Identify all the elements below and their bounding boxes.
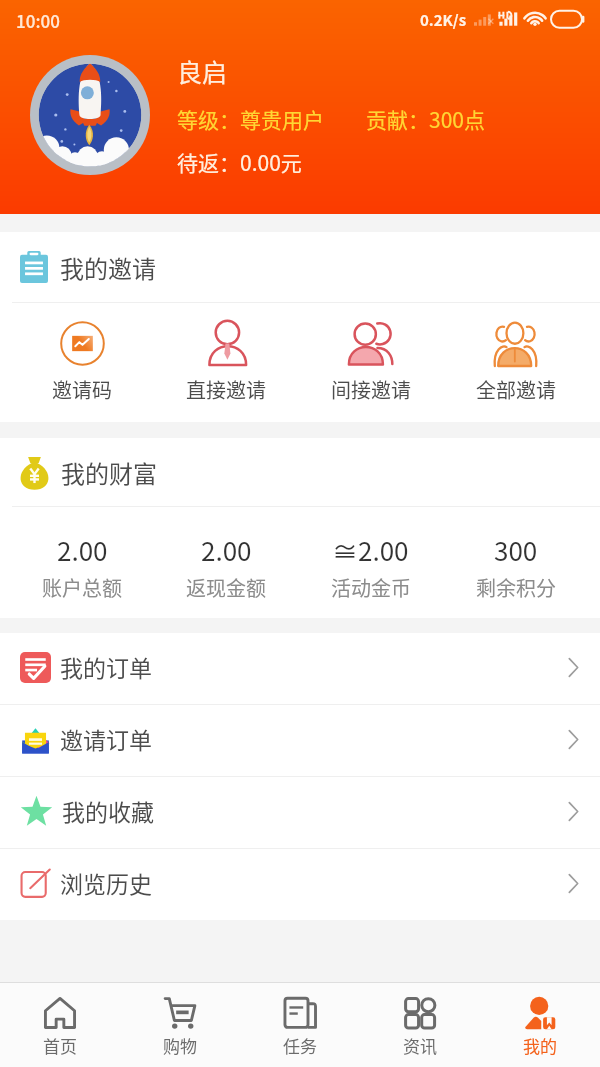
button[interactable]: 300 (443, 507, 588, 618)
staticText: 我的邀请 (60, 250, 156, 285)
button[interactable]: 邀请码 (10, 303, 154, 422)
staticText: 资讯 (403, 1033, 437, 1058)
staticText: 300 (494, 531, 538, 569)
button[interactable]: 2.00 (154, 507, 298, 618)
button[interactable]: 我的订单 (0, 633, 600, 704)
staticText: 2.00 (201, 531, 252, 569)
button[interactable]: 邀请订单 (0, 705, 600, 776)
button[interactable]: 我的收藏 (0, 777, 600, 848)
staticText: 浏览历史 (60, 866, 152, 899)
staticText: 贡献：300点 (366, 104, 485, 134)
button[interactable]: 首页 (0, 983, 120, 1067)
staticText: ≅2.00 (332, 531, 409, 569)
staticText: 待返：0.00元 (177, 147, 302, 177)
staticText: 任务 (283, 1033, 317, 1058)
staticText: 间接邀请 (331, 375, 411, 404)
button[interactable]: 资讯 (360, 983, 480, 1067)
staticText: 账户总额 (42, 573, 122, 602)
button[interactable]: 我的 (480, 983, 600, 1067)
staticText: 2.00 (57, 531, 108, 569)
staticText: 0.2K/s (420, 9, 467, 31)
button[interactable]: 购物 (120, 983, 240, 1067)
staticText: 首页 (43, 1033, 77, 1058)
staticText: 购物 (163, 1033, 197, 1058)
staticText: 邀请码 (52, 375, 112, 404)
button[interactable]: 间接邀请 (298, 303, 443, 422)
staticText: 10:00 (16, 8, 60, 33)
staticText: 等级：尊贵用户 (177, 104, 324, 134)
staticText: 良启 (177, 53, 228, 89)
staticText: 邀请订单 (60, 722, 152, 755)
staticText: 我的 (523, 1033, 557, 1058)
button[interactable]: 任务 (240, 983, 360, 1067)
staticText: 返现金额 (186, 573, 266, 602)
button[interactable]: 浏览历史 (0, 849, 600, 920)
button[interactable]: ≅2.00 (298, 507, 443, 618)
staticText: 全部邀请 (476, 375, 556, 404)
staticText: 直接邀请 (186, 375, 266, 404)
button[interactable]: 全部邀请 (443, 303, 588, 422)
staticText: 我的收藏 (62, 794, 154, 827)
staticText: 活动金币 (331, 573, 411, 602)
button[interactable]: 直接邀请 (154, 303, 298, 422)
staticText: 我的订单 (60, 650, 152, 683)
staticText: 我的财富 (61, 455, 157, 490)
button[interactable]: 2.00 (10, 507, 154, 618)
staticText: 剩余积分 (476, 573, 556, 602)
